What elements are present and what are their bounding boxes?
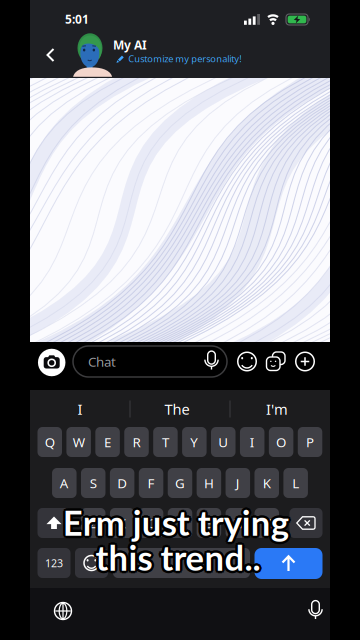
button[interactable]: 123 xyxy=(37,548,70,578)
button[interactable]: Y xyxy=(182,427,207,457)
staticText: K xyxy=(263,474,271,492)
button[interactable]: Chat xyxy=(73,346,227,377)
button[interactable]: F xyxy=(139,468,163,498)
staticText: O xyxy=(276,433,286,451)
staticText: F xyxy=(148,474,155,492)
staticText: this trend.. xyxy=(97,538,262,580)
button[interactable]: Z xyxy=(81,508,105,538)
button[interactable]: E xyxy=(95,427,120,457)
staticText: Erm just trying xyxy=(65,503,291,545)
staticText: R xyxy=(132,433,140,451)
staticText: 5:01 xyxy=(65,11,89,27)
staticText: Erm just trying xyxy=(65,502,291,543)
button[interactable]: D xyxy=(110,468,134,498)
button[interactable]: G xyxy=(168,468,192,498)
button[interactable]: Camera xyxy=(38,348,66,376)
button[interactable]: T xyxy=(153,427,178,457)
staticText: Customize my personality! xyxy=(128,52,242,65)
staticText: this trend.. xyxy=(93,536,258,578)
button[interactable]: A xyxy=(52,468,76,498)
button[interactable]: Stickers xyxy=(234,348,260,374)
button[interactable]: Shift xyxy=(37,508,70,538)
button[interactable]: I xyxy=(240,427,264,457)
staticText: Z xyxy=(89,514,97,532)
staticText: Q xyxy=(45,433,55,451)
staticText: I xyxy=(250,433,255,451)
button[interactable]: I'm xyxy=(232,396,322,422)
staticText: A xyxy=(60,474,69,492)
button[interactable]: Delete xyxy=(289,508,322,538)
staticText: Y xyxy=(190,433,198,451)
staticText: Erm just trying xyxy=(63,504,289,546)
button[interactable]: M xyxy=(254,508,279,538)
button[interactable]: N xyxy=(226,508,250,538)
button[interactable]: Dictation xyxy=(300,596,330,626)
button[interactable]: O xyxy=(269,427,293,457)
staticText: B xyxy=(204,514,213,532)
staticText: T xyxy=(162,433,169,451)
staticText: Erm just trying xyxy=(65,500,291,541)
staticText: V xyxy=(176,514,184,532)
button[interactable]: R xyxy=(124,427,149,457)
button[interactable]: B xyxy=(197,508,221,538)
button[interactable]: V xyxy=(168,508,192,538)
button[interactable]: S xyxy=(81,468,105,498)
button[interactable]: X xyxy=(110,508,134,538)
staticText: E xyxy=(104,433,111,451)
staticText: P xyxy=(306,433,314,451)
button[interactable]: K xyxy=(254,468,279,498)
staticText: this trend.. xyxy=(97,535,262,576)
staticText: I'm xyxy=(266,399,288,419)
button[interactable]: W xyxy=(66,427,91,457)
staticText: N xyxy=(233,514,243,532)
staticText: X xyxy=(118,514,126,532)
staticText: M xyxy=(261,514,273,532)
staticText: C xyxy=(147,514,155,532)
staticText: Chat xyxy=(88,353,116,370)
staticText: this trend.. xyxy=(95,539,260,581)
staticText: this trend.. xyxy=(95,536,260,578)
button[interactable]: Memories xyxy=(263,348,289,374)
staticText: Erm just trying xyxy=(63,499,289,541)
button[interactable]: H xyxy=(197,468,221,498)
button[interactable]: L xyxy=(283,468,308,498)
button[interactable]: U xyxy=(211,427,235,457)
staticText: I xyxy=(77,399,82,419)
button[interactable]: P xyxy=(298,427,322,457)
staticText: this trend.. xyxy=(95,534,260,576)
staticText: L xyxy=(292,474,299,492)
staticText: this trend.. xyxy=(98,536,263,578)
staticText: D xyxy=(117,474,127,492)
staticText: Erm just trying xyxy=(63,502,289,543)
staticText: this trend.. xyxy=(94,535,259,576)
button[interactable]: Next keyboard xyxy=(48,596,78,626)
button[interactable]: More xyxy=(292,348,318,374)
staticText: Erm just trying xyxy=(60,502,286,543)
staticText: Erm just trying xyxy=(61,503,287,545)
staticText: S xyxy=(90,474,97,492)
staticText: G xyxy=(175,474,185,492)
staticText: W xyxy=(73,433,85,451)
staticText: this trend.. xyxy=(94,538,259,580)
staticText: 123 xyxy=(45,556,63,570)
staticText: J xyxy=(236,474,240,492)
button[interactable]: My AI profile xyxy=(68,33,243,79)
button[interactable]: I xyxy=(35,396,125,422)
button[interactable]: Space xyxy=(113,548,250,578)
button[interactable]: The xyxy=(132,396,222,422)
staticText: My AI xyxy=(113,37,147,53)
button[interactable]: Voice message xyxy=(199,349,223,373)
button[interactable]: Q xyxy=(37,427,62,457)
staticText: Erm just trying xyxy=(61,500,287,541)
button[interactable]: J xyxy=(226,468,250,498)
button[interactable]: Back xyxy=(39,43,63,67)
button[interactable]: C xyxy=(139,508,163,538)
staticText: H xyxy=(204,474,214,492)
staticText: U xyxy=(218,433,228,451)
button[interactable]: Send xyxy=(254,548,322,579)
staticText: The xyxy=(164,399,189,419)
button[interactable]: Emoji xyxy=(75,548,108,578)
